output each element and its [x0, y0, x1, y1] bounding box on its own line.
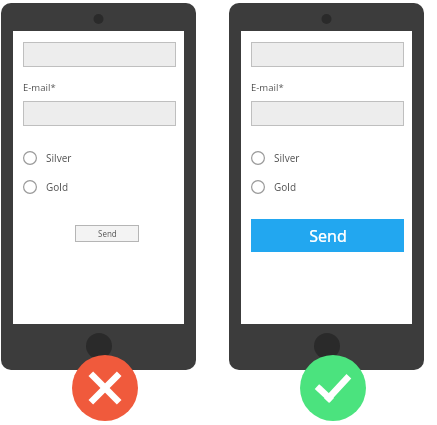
button[interactable] [23, 101, 176, 126]
staticText: Gold [274, 180, 297, 194]
button[interactable] [251, 42, 404, 67]
button[interactable] [251, 101, 404, 126]
staticText: Silver [274, 151, 300, 165]
button[interactable]: Gold [23, 177, 176, 197]
staticText: Send [309, 225, 347, 247]
staticText: E-mail* [23, 81, 56, 94]
button[interactable]: Silver [251, 148, 404, 168]
button[interactable]: Send [75, 225, 139, 242]
staticText: E-mail* [251, 81, 284, 94]
button[interactable]: Send [251, 219, 404, 252]
button[interactable] [23, 42, 176, 67]
staticText: Silver [46, 151, 72, 165]
button[interactable]: Gold [251, 177, 404, 197]
button[interactable]: Silver [23, 148, 176, 168]
button[interactable]: Correct [300, 355, 366, 421]
button[interactable]: Incorrect [72, 355, 138, 421]
staticText: Gold [46, 180, 69, 194]
staticText: Send [98, 228, 117, 239]
